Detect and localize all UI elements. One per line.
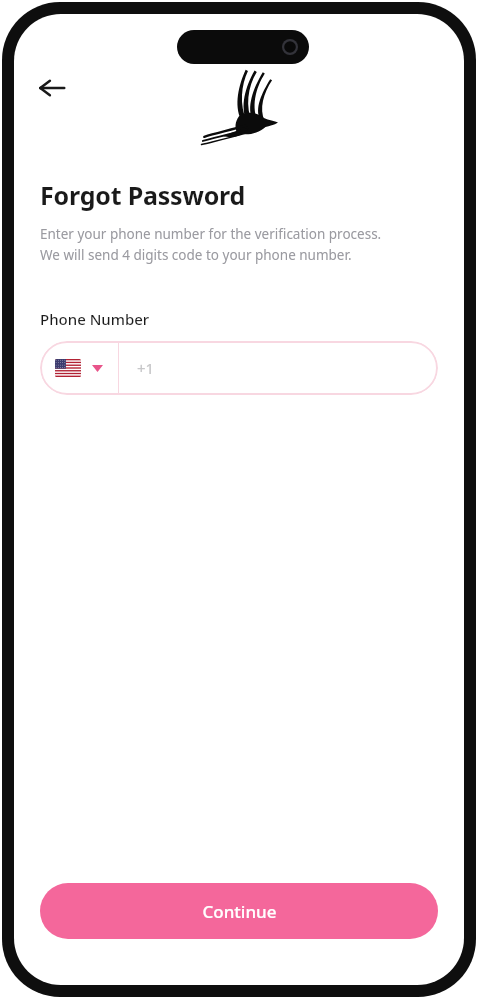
button[interactable]: Continue [40, 883, 438, 939]
button[interactable]: Back [30, 66, 74, 110]
staticText: Forgot Password [40, 178, 246, 212]
staticText: Enter your phone number for the verifica… [40, 225, 382, 264]
staticText: +1 [137, 358, 155, 378]
button[interactable]: Select country code [40, 341, 118, 395]
button[interactable]: Select country code [40, 341, 438, 395]
staticText: Phone Number [40, 309, 150, 329]
staticText: Continue [202, 900, 277, 923]
